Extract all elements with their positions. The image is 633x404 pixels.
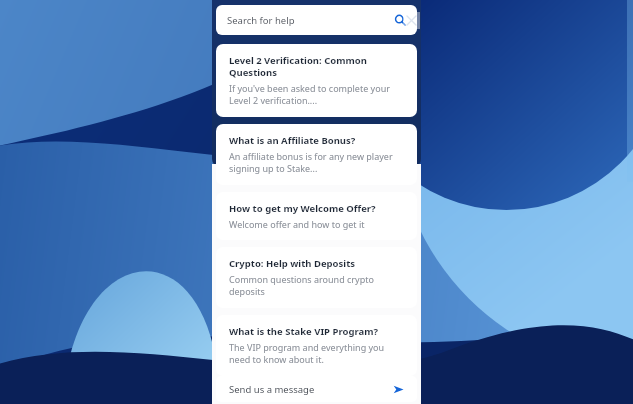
button[interactable]: What is an Affiliate Bonus?	[216, 124, 417, 185]
other: Send	[393, 384, 404, 395]
button[interactable]: What is the Stake VIP Program?	[216, 315, 417, 376]
staticText: What is the Stake VIP Program?	[229, 325, 378, 338]
button[interactable]: Level 2 Verification: Common Questions	[216, 44, 417, 117]
staticText: The VIP program and everything you need …	[229, 341, 404, 366]
button[interactable]: Crypto: Help with Deposits	[216, 247, 417, 308]
staticText: Search for help	[227, 14, 295, 27]
button[interactable]: Search for help	[216, 5, 417, 35]
other: Search	[394, 14, 406, 26]
staticText: Common questions around crypto deposits	[229, 273, 404, 298]
staticText: What is an Affiliate Bonus?	[229, 134, 356, 147]
staticText: How to get my Welcome Offer?	[229, 202, 376, 215]
staticText: Level 2 Verification: Common Questions	[229, 54, 404, 79]
staticText: Crypto: Help with Deposits	[229, 257, 356, 270]
staticText: If you've been asked to complete your Le…	[229, 82, 404, 107]
button[interactable]: Send us a message	[216, 376, 417, 402]
staticText: An affiliate bonus is for any new player…	[229, 150, 404, 175]
button[interactable]: Close	[403, 12, 420, 29]
staticText: Send us a message	[229, 383, 315, 396]
staticText: Welcome offer and how to get it	[229, 218, 365, 230]
button[interactable]: How to get my Welcome Offer?	[216, 192, 417, 240]
